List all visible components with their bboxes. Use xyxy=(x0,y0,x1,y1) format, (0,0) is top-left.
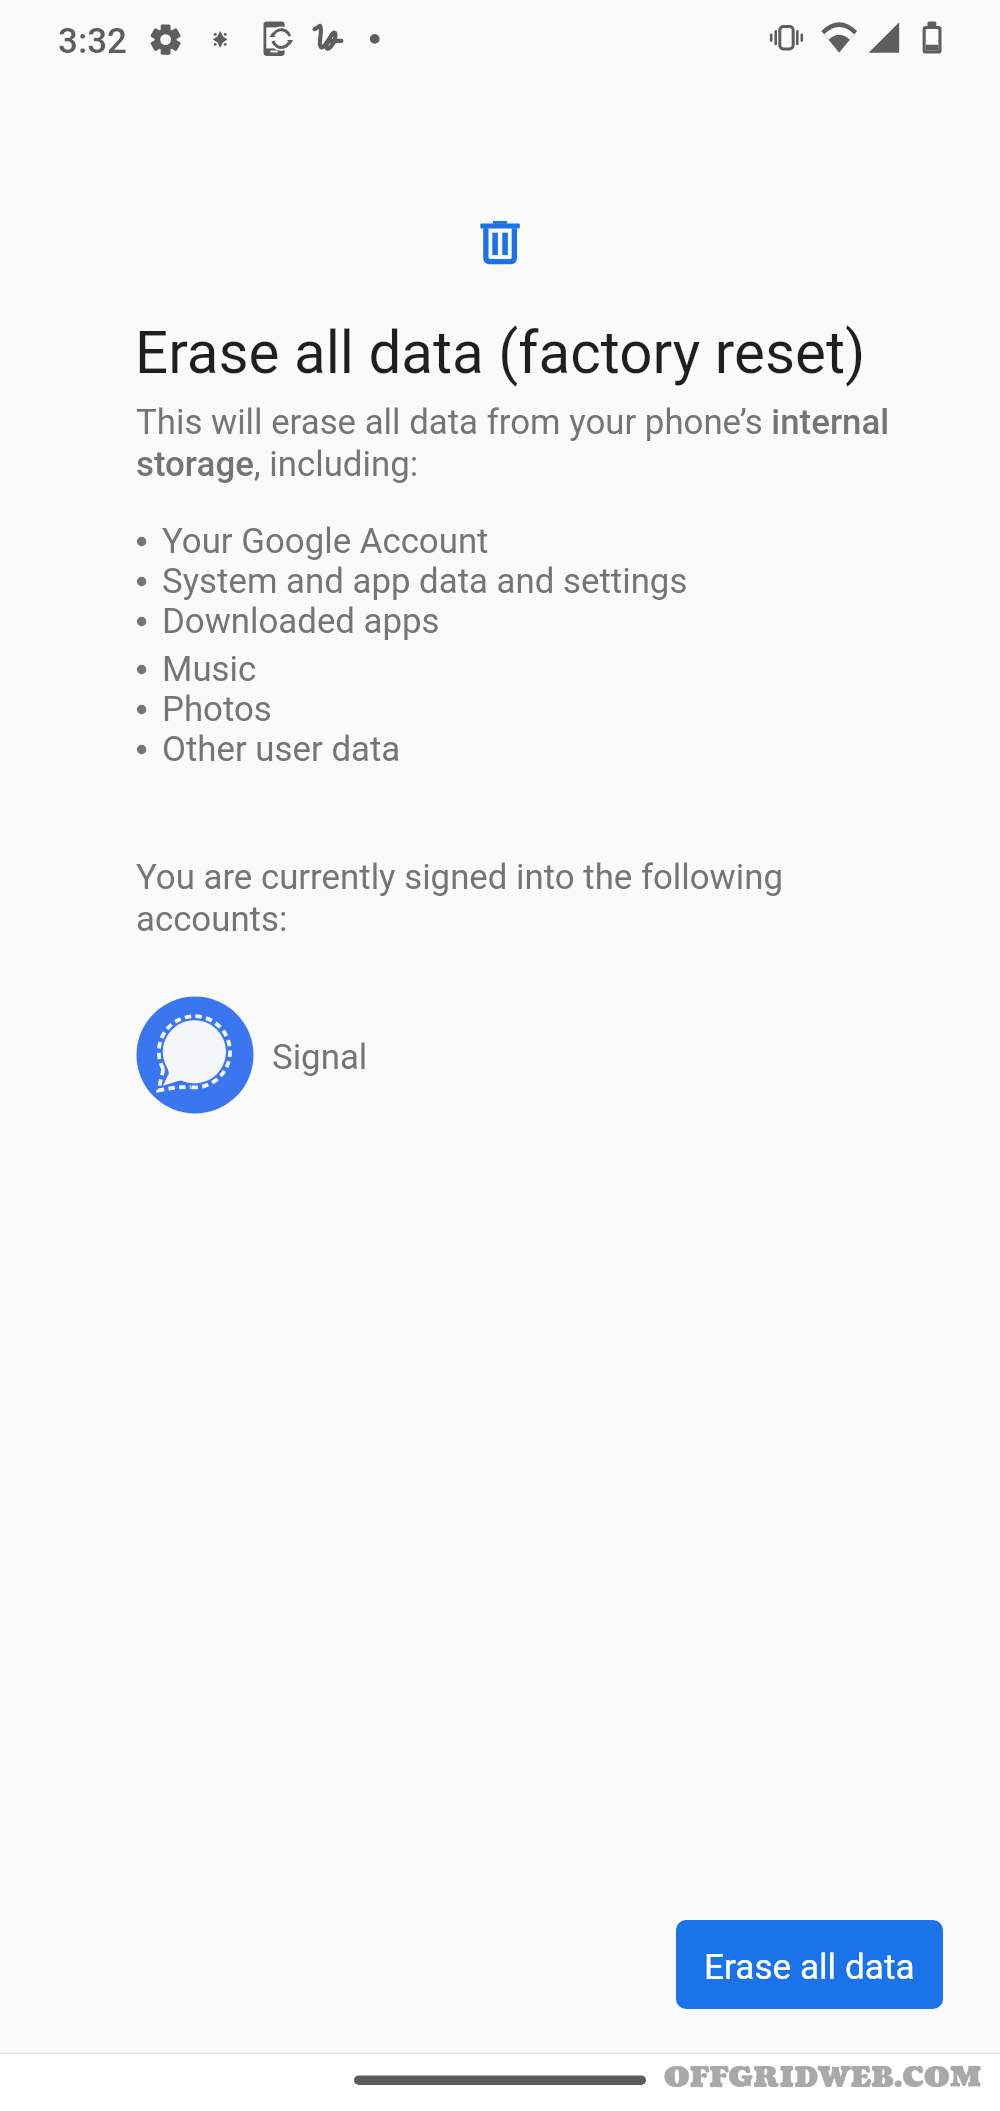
staticText: Your Google Account xyxy=(162,521,489,562)
staticText: 3:32 xyxy=(58,21,127,62)
staticText: Erase all data (factory reset) xyxy=(135,319,866,387)
staticText: accounts: xyxy=(136,899,288,940)
staticText: OFFGRIDWEB.COM xyxy=(664,2058,982,2098)
staticText: This will erase all data from your phone… xyxy=(136,402,890,443)
staticText: You are currently signed into the follow… xyxy=(136,857,783,898)
staticText: Downloaded apps xyxy=(162,601,440,642)
staticText: Photos xyxy=(162,689,272,730)
staticText: Other user data xyxy=(162,729,401,770)
staticText: storage, including: xyxy=(136,444,419,485)
staticText: Erase all data xyxy=(704,1946,915,1987)
staticText: Signal xyxy=(272,1037,368,1078)
staticText: System and app data and settings xyxy=(162,561,688,602)
button[interactable]: Erase all data xyxy=(676,1920,943,2009)
staticText: Music xyxy=(162,649,257,690)
